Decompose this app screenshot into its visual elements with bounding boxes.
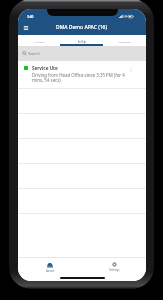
button[interactable]: Assets xyxy=(18,258,82,276)
staticText: Settings xyxy=(109,268,120,272)
button[interactable]: All Assets xyxy=(18,35,60,46)
staticText: Assets xyxy=(46,269,55,273)
button[interactable]: Settings xyxy=(82,258,146,276)
staticText: In Trip xyxy=(78,40,86,43)
staticText: Driving from Head Office since 3:35 PM (… xyxy=(32,72,125,83)
button[interactable]: Open navigation menu xyxy=(20,22,32,34)
button[interactable]: Favourites xyxy=(103,35,146,46)
staticText: Favourites xyxy=(118,40,131,43)
staticText: All Assets xyxy=(33,40,45,43)
button[interactable]: Service Ute xyxy=(18,61,146,88)
button[interactable]: In Trip xyxy=(60,35,103,46)
staticText: Service Ute xyxy=(32,65,58,71)
staticText: Search xyxy=(28,51,40,56)
staticText: 3:40 xyxy=(27,15,34,19)
staticText: DMA Demo APAC (16) xyxy=(56,24,108,31)
